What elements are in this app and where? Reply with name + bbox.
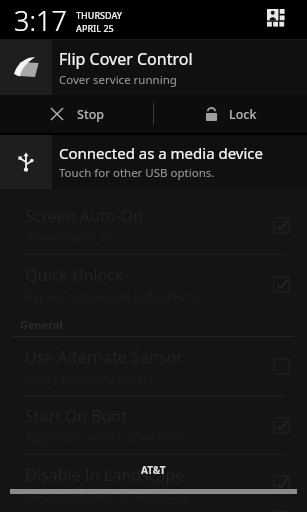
staticText: Flip Cover Control [59,48,193,70]
button[interactable]: Disable In Landscape [0,455,307,512]
staticText: Use Alternate Sensor [25,346,183,368]
staticText: APRIL 25 [76,22,114,34]
button[interactable]: Lock [154,95,307,133]
staticText: Screen Auto-On [25,205,143,227]
staticText: Touch for other USB options. [59,165,215,181]
staticText: Service disabled in landscape [25,488,190,504]
staticText: Connected as a media device [59,143,264,163]
staticText: General [20,317,63,332]
staticText: Cover service running [59,72,177,88]
staticText: Stop [77,106,105,123]
button[interactable]: Connected as a media device [0,135,307,189]
staticText: Quick Unlock [25,264,124,286]
staticText: THURSDAY [76,9,123,21]
staticText: 3:17 [14,2,67,39]
button[interactable]: Quick settings [261,3,295,37]
button[interactable]: Stop [0,95,153,133]
staticText: Start On Boot [25,405,128,427]
staticText: Disable In Landscape [25,464,185,486]
staticText: Lock [229,106,257,123]
button[interactable]: Flip Cover Control [0,40,307,95]
staticText: AT&T [141,463,166,477]
